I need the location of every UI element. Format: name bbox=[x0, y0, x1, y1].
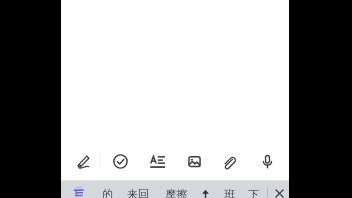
button[interactable]: Attach file bbox=[213, 148, 243, 180]
staticText: 的 bbox=[102, 187, 113, 198]
staticText: 来回 bbox=[127, 187, 149, 198]
staticText: 下 bbox=[248, 187, 259, 198]
button[interactable]: 摩擦 bbox=[161, 186, 191, 198]
button[interactable]: 下 bbox=[241, 186, 265, 198]
button[interactable]: Input method settings bbox=[66, 184, 90, 198]
staticText: 摩擦 bbox=[165, 187, 187, 198]
button[interactable]: Checklist bbox=[105, 148, 135, 180]
button[interactable]: Text formatting bbox=[142, 148, 172, 180]
button[interactable]: More candidates bbox=[195, 186, 215, 198]
button[interactable]: 班 bbox=[217, 186, 241, 198]
button[interactable]: Handwriting bbox=[68, 148, 98, 180]
button[interactable]: Insert image bbox=[179, 148, 209, 180]
button[interactable]: Close keyboard bbox=[270, 186, 289, 198]
button[interactable]: 来回 bbox=[123, 186, 153, 198]
button[interactable]: 的 bbox=[95, 186, 119, 198]
staticText: 班 bbox=[224, 187, 235, 198]
button[interactable]: Voice input bbox=[252, 148, 282, 180]
